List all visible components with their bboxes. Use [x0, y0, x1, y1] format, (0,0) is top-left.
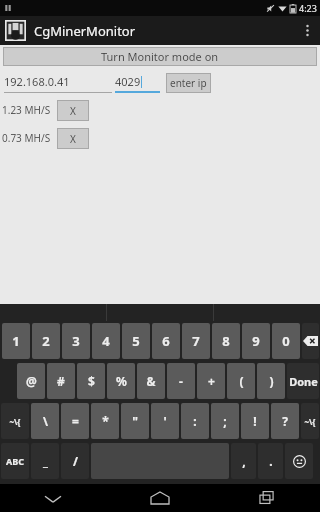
button[interactable]: 4029 — [115, 74, 160, 93]
button[interactable]: _ — [31, 443, 59, 479]
button[interactable]: # — [47, 363, 75, 399]
staticText: \ — [43, 413, 48, 429]
button[interactable]: 192.168.0.41 — [4, 74, 112, 93]
staticText: 2 — [42, 332, 50, 350]
staticText: , — [242, 453, 246, 469]
button[interactable]: 0 — [272, 323, 300, 359]
staticText: ( — [239, 373, 244, 389]
staticText: ABC — [6, 455, 24, 467]
staticText: ! — [253, 413, 257, 429]
button[interactable]: - — [167, 363, 195, 399]
staticText: $ — [88, 373, 95, 389]
button[interactable]: Emoji — [285, 443, 313, 479]
button[interactable]: Back — [0, 484, 106, 512]
staticText: ~\{ — [304, 416, 316, 427]
button[interactable]: 7 — [182, 323, 210, 359]
staticText: ~\{ — [9, 416, 21, 427]
staticText: 5 — [132, 332, 140, 350]
button[interactable]: * — [91, 403, 119, 439]
button[interactable]: \ — [31, 403, 59, 439]
staticText: 192.168.0.41 — [4, 74, 70, 89]
staticText: = — [72, 413, 79, 429]
staticText: 0.73 MH/S — [2, 131, 51, 145]
button[interactable]: 5 — [122, 323, 150, 359]
staticText: 1 — [12, 332, 20, 350]
staticText: + — [208, 373, 215, 389]
staticText: 4:23 — [299, 2, 317, 14]
button[interactable]: " — [121, 403, 149, 439]
button[interactable]: Home — [106, 484, 213, 512]
button[interactable]: More options — [294, 16, 320, 45]
button[interactable]: 1 — [2, 323, 30, 359]
staticText: * — [102, 413, 109, 429]
button[interactable]: % — [107, 363, 135, 399]
staticText: 4029 — [115, 74, 141, 89]
button[interactable]: @ — [17, 363, 45, 399]
staticText: ; — [223, 413, 227, 429]
staticText: : — [193, 413, 197, 429]
staticText: enter ip — [170, 76, 207, 90]
button[interactable]: ' — [151, 403, 179, 439]
staticText: X — [70, 132, 76, 146]
button[interactable]: : — [181, 403, 209, 439]
button[interactable]: ~\{ — [1, 403, 29, 439]
staticText: X — [70, 104, 76, 118]
staticText: 0 — [282, 332, 290, 350]
staticText: Turn Monitor mode on — [101, 49, 219, 64]
staticText: ) — [269, 373, 274, 389]
button[interactable]: + — [197, 363, 225, 399]
button[interactable]: , — [231, 443, 256, 479]
staticText: CgMinerMonitor — [34, 22, 136, 40]
button[interactable]: = — [61, 403, 89, 439]
staticText: 8 — [222, 332, 230, 350]
button[interactable]: & — [137, 363, 165, 399]
button[interactable]: 6 — [152, 323, 180, 359]
staticText: 7 — [192, 332, 200, 350]
staticText: 9 — [252, 332, 260, 350]
staticText: ' — [163, 413, 167, 429]
button[interactable]: ~\{ — [301, 403, 319, 439]
button[interactable]: 9 — [242, 323, 270, 359]
button[interactable]: $ — [77, 363, 105, 399]
staticText: 1.23 MH/S — [2, 103, 51, 117]
button[interactable]: ? — [271, 403, 299, 439]
staticText: - — [179, 373, 183, 389]
button[interactable]: 2 — [32, 323, 60, 359]
button[interactable]: X — [58, 129, 88, 148]
staticText: @ — [26, 373, 37, 389]
button[interactable]: ABC — [1, 443, 29, 479]
button[interactable]: . — [258, 443, 283, 479]
button[interactable]: ! — [241, 403, 269, 439]
staticText: Done — [289, 374, 318, 389]
button[interactable]: enter ip — [167, 74, 210, 92]
staticText: . — [269, 453, 273, 469]
staticText: & — [146, 373, 156, 389]
staticText: / — [73, 453, 78, 469]
staticText: " — [132, 413, 138, 429]
button[interactable]: / — [61, 443, 89, 479]
button[interactable]: Delete — [302, 323, 319, 359]
button[interactable]: 8 — [212, 323, 240, 359]
button[interactable]: Done — [287, 363, 319, 399]
button[interactable]: ) — [257, 363, 285, 399]
staticText: 6 — [162, 332, 170, 350]
button[interactable]: 3 — [62, 323, 90, 359]
button[interactable]: 4 — [92, 323, 120, 359]
button[interactable]: ( — [227, 363, 255, 399]
staticText: 3 — [72, 332, 80, 350]
staticText: ? — [282, 413, 288, 429]
button[interactable]: Turn Monitor mode on — [4, 48, 316, 65]
staticText: # — [57, 373, 65, 389]
staticText: _ — [43, 453, 48, 469]
staticText: 4 — [102, 332, 110, 350]
button[interactable]: X — [58, 101, 88, 120]
staticText: % — [116, 373, 127, 389]
button[interactable]: ; — [211, 403, 239, 439]
button[interactable]: Recent apps — [213, 484, 320, 512]
